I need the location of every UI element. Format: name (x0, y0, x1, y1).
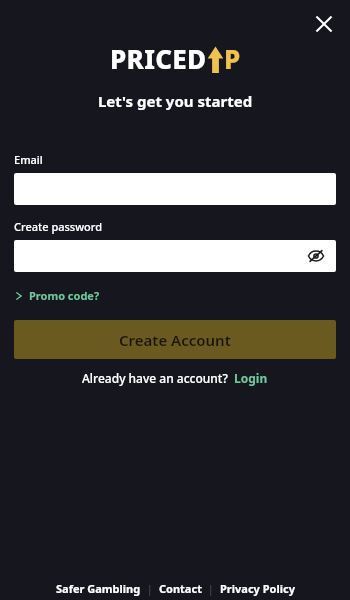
button[interactable]: Email field (14, 173, 336, 205)
staticText: Create Account (119, 330, 231, 350)
staticText: Already have an account? (82, 370, 228, 386)
button[interactable]: Close (306, 6, 342, 42)
button[interactable]: Promo code? (14, 286, 100, 305)
staticText: Safer Gambling (56, 581, 141, 596)
staticText: | (141, 581, 159, 596)
button[interactable]: Safer Gambling (56, 581, 141, 596)
button[interactable]: Create Account (14, 320, 336, 359)
button[interactable]: Show password (304, 244, 328, 268)
staticText: Let's get you started (0, 91, 350, 111)
staticText: Promo code? (29, 288, 100, 303)
staticText: Email (14, 152, 43, 167)
staticText: Create password (14, 219, 103, 234)
staticText: Contact (159, 581, 202, 596)
staticText: P (224, 41, 241, 76)
button[interactable]: Privacy Policy (220, 581, 295, 596)
button[interactable]: Password field (14, 240, 336, 272)
button[interactable]: Login (234, 370, 268, 386)
staticText: Privacy Policy (220, 581, 295, 596)
staticText: Login (234, 370, 268, 386)
button[interactable]: Contact (159, 581, 202, 596)
staticText: | (202, 581, 220, 596)
staticText: PRICED (110, 41, 207, 76)
